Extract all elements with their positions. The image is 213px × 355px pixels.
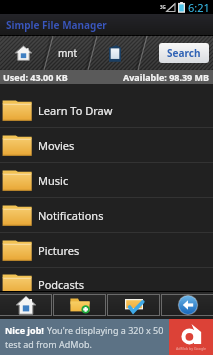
staticText: Search — [167, 46, 201, 60]
staticText: Used: 43.00 KB — [3, 71, 68, 83]
staticText: Movies — [38, 138, 75, 153]
staticText: Music — [38, 173, 69, 188]
button[interactable]: Search — [159, 43, 209, 63]
button[interactable]: sdcard — [90, 36, 140, 70]
staticText: You're displaying a 320 x 50 — [47, 324, 164, 336]
button[interactable]: Music — [0, 163, 213, 198]
staticText: Learn To Draw — [38, 103, 113, 118]
button[interactable]: Learn To Draw — [0, 93, 213, 128]
button[interactable]: Notifications — [0, 198, 213, 233]
staticText: Available: 98.39 MB — [123, 71, 210, 83]
button[interactable]: Podcasts — [0, 268, 213, 291]
button[interactable]: Home — [0, 294, 51, 316]
staticText: Pictures — [38, 243, 80, 258]
staticText: Podcasts — [38, 277, 85, 291]
button[interactable]: Paste — [108, 294, 159, 316]
button[interactable]: New folder — [54, 294, 105, 316]
button[interactable]: Pictures — [0, 233, 213, 268]
staticText: 6:21 — [188, 0, 210, 14]
button[interactable]: Back — [162, 294, 213, 316]
staticText: Simple File Manager — [6, 18, 107, 32]
button[interactable]: Home — [0, 36, 46, 70]
staticText: 3G — [160, 4, 166, 10]
staticText: AdMob by Google — [176, 346, 207, 351]
staticText: Notifications — [38, 208, 104, 223]
staticText: mnt — [58, 46, 78, 60]
button[interactable]: Nice job! — [0, 319, 213, 355]
button[interactable]: Movies — [0, 128, 213, 163]
staticText: test ad from AdMob. — [5, 338, 92, 350]
staticText: Nice job! — [5, 324, 47, 336]
button[interactable]: mnt — [46, 36, 90, 70]
